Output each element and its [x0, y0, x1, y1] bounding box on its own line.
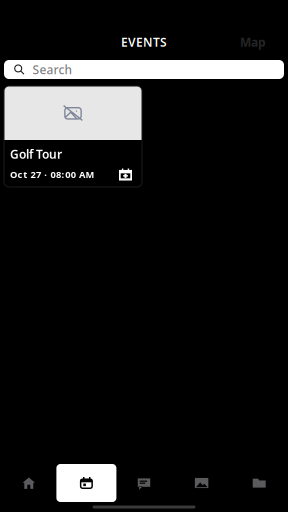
button[interactable]: Map — [240, 30, 288, 54]
staticText: Search — [32, 61, 72, 77]
button[interactable]: Files — [230, 464, 288, 502]
staticText: EVENTS — [121, 34, 167, 50]
button[interactable]: Home — [0, 464, 58, 502]
staticText: Oct 27 · 08:00 AM — [10, 168, 95, 181]
button[interactable]: Gallery — [173, 464, 230, 502]
button[interactable]: Golf Tour — [4, 86, 142, 187]
staticText: Map — [240, 34, 266, 50]
staticText: Golf Tour — [10, 146, 62, 162]
button[interactable]: Messages — [115, 464, 173, 502]
button[interactable]: Events — [58, 464, 115, 502]
